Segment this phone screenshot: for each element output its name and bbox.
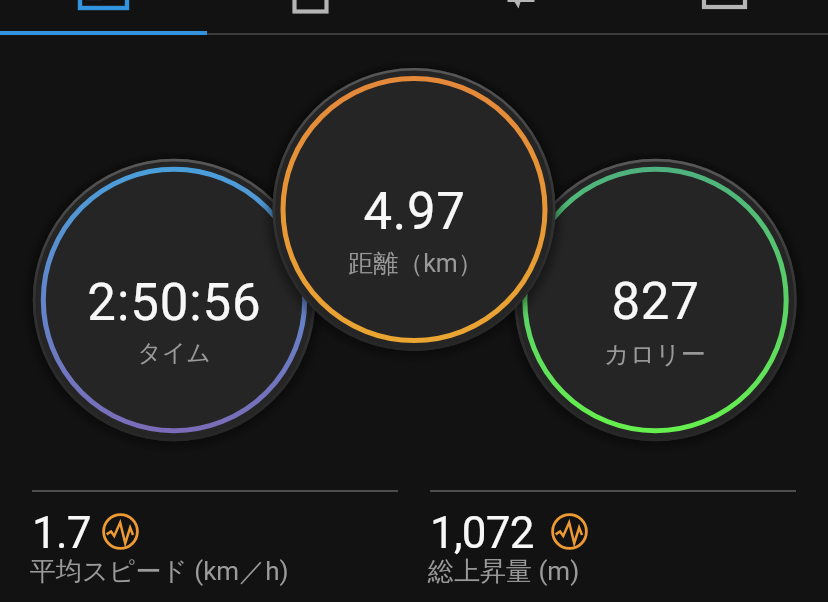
- button[interactable]: Photos: [207, 0, 414, 34]
- button[interactable]: 1.7: [32, 482, 398, 602]
- other: Details: [102, 513, 139, 550]
- button[interactable]: Route: [414, 0, 621, 34]
- other: Details: [551, 513, 588, 550]
- button[interactable]: Activity: [0, 0, 207, 34]
- staticText: 総上昇量 (m): [428, 555, 580, 588]
- staticText: 平均スピード (km／h): [30, 555, 289, 588]
- staticText: 4.97: [363, 182, 466, 242]
- button[interactable]: 1,072: [430, 482, 796, 602]
- staticText: 1,072: [430, 507, 534, 559]
- staticText: タイム: [137, 338, 211, 368]
- staticText: カロリー: [604, 339, 706, 370]
- button[interactable]: Profile: [621, 0, 828, 34]
- staticText: 827: [611, 272, 700, 332]
- staticText: 1.7: [32, 507, 91, 559]
- staticText: 2:50:56: [87, 273, 262, 333]
- staticText: 距離（km）: [348, 248, 483, 279]
